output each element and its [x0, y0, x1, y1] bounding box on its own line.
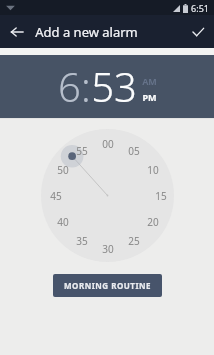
button[interactable]: 00: [41, 129, 174, 262]
button[interactable]: Back: [0, 15, 33, 48]
staticText: 30: [102, 242, 114, 256]
staticText: 15: [155, 189, 167, 203]
staticText: 55: [76, 144, 88, 158]
button[interactable]: MORNING ROUTINE: [53, 274, 162, 297]
button[interactable]: 6: [58, 59, 81, 113]
staticText: 00: [102, 137, 114, 151]
staticText: 35: [76, 234, 88, 248]
staticText: Add a new alarm: [35, 23, 138, 41]
staticText: 45: [50, 189, 62, 203]
staticText: 6: [58, 59, 81, 113]
staticText: 10: [147, 163, 159, 177]
staticText: 53: [91, 59, 137, 113]
staticText: 50: [57, 163, 69, 177]
staticText: 20: [147, 215, 159, 229]
staticText: MORNING ROUTINE: [64, 280, 151, 291]
staticText: 6:51: [191, 2, 209, 14]
button[interactable]: 53: [91, 59, 137, 113]
staticText: 05: [128, 144, 140, 158]
staticText: :: [81, 59, 91, 113]
button[interactable]: Save alarm: [181, 15, 214, 48]
staticText: PM: [142, 91, 157, 103]
button[interactable]: PM: [142, 91, 157, 103]
staticText: 40: [57, 215, 69, 229]
staticText: AM: [142, 75, 157, 87]
button[interactable]: AM: [142, 75, 157, 87]
staticText: 25: [128, 234, 140, 248]
